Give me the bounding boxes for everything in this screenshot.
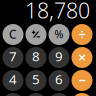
staticText: 8 [32,47,40,65]
button[interactable]: 7 [2,47,23,68]
button[interactable]: Plus [71,93,92,96]
button[interactable]: 3 [48,93,69,96]
staticText: 6 [55,70,63,88]
button[interactable]: 4 [2,70,23,91]
staticText: 1 [9,93,17,96]
staticText: C [9,26,17,42]
button[interactable]: Multiply [71,47,92,68]
staticText: 5 [32,70,40,88]
staticText: 2 [32,93,40,96]
button[interactable]: % [48,24,69,45]
staticText: 9 [55,47,63,65]
staticText: % [54,27,63,41]
button[interactable]: 1 [2,93,23,96]
staticText: 18,780 [25,0,90,24]
button[interactable]: 5 [25,70,46,91]
button[interactable]: Minus [71,70,92,91]
button[interactable]: Plus minus [25,24,46,45]
button[interactable]: Divide [71,24,92,45]
button[interactable]: 8 [25,47,46,68]
button[interactable]: C [2,24,23,45]
staticText: 7 [9,47,17,65]
button[interactable]: 2 [25,93,46,96]
button[interactable]: 6 [48,70,69,91]
button[interactable]: 9 [48,47,69,68]
staticText: 4 [9,70,17,88]
staticText: 3 [55,93,63,96]
